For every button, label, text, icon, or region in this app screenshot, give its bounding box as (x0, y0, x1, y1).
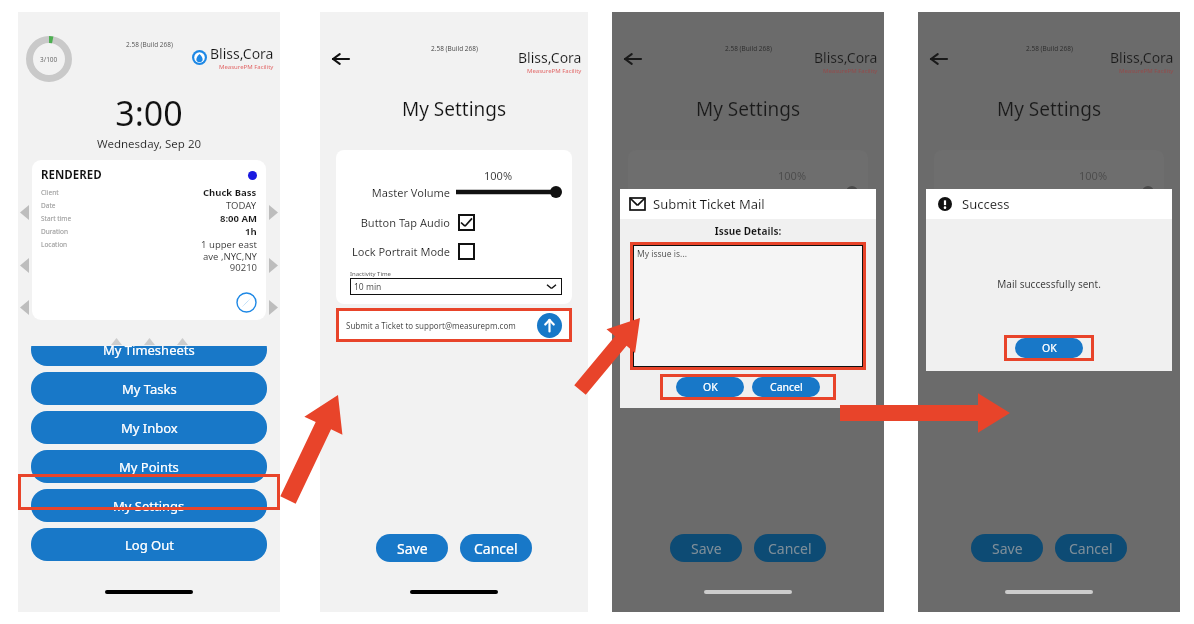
staticText: 1h (245, 225, 257, 238)
button[interactable]: Navigate (236, 292, 257, 313)
staticText: Log Out (125, 536, 174, 554)
staticText: Bliss,Cora (210, 44, 274, 63)
staticText: Bliss,Cora (814, 48, 878, 67)
button[interactable]: Cancel (752, 377, 820, 397)
button[interactable]: Submit a Ticket to support@measurepm.com (336, 308, 572, 342)
button[interactable]: Back (926, 46, 952, 72)
button[interactable]: OK (1015, 338, 1083, 358)
button[interactable]: My Inbox (31, 411, 267, 444)
staticText: Client (41, 188, 203, 197)
button[interactable]: Log Out (31, 528, 267, 561)
staticText: Bliss,Cora (518, 48, 582, 67)
staticText: Inactivity Time (350, 270, 391, 278)
staticText: Master Volume (342, 185, 450, 200)
staticText: 1 upper east ave ,NYC,NY 90210 (201, 238, 257, 274)
button[interactable]: Cancel (1055, 534, 1127, 562)
staticText: 2.58 (Build 268) (431, 44, 478, 53)
staticText: 2.58 (Build 268) (126, 40, 173, 49)
staticText: MeasurePM Facility (527, 67, 582, 75)
button[interactable]: 10 min (350, 278, 562, 295)
button[interactable]: Save (376, 534, 448, 562)
button[interactable]: OK (676, 377, 744, 397)
staticText: MeasurePM Facility (1119, 67, 1174, 75)
staticText: Button Tap Audio (940, 215, 1048, 230)
button[interactable]: 10 min (948, 278, 1154, 295)
staticText: Location (41, 240, 201, 249)
staticText: MeasurePM Facility (823, 67, 878, 75)
staticText: OK (1042, 341, 1057, 355)
staticText: My Settings (612, 96, 884, 122)
staticText: Issue Details: (630, 224, 866, 238)
staticText: My Settings (320, 96, 588, 122)
staticText: Cancel (1069, 539, 1113, 558)
staticText: 100% (484, 168, 513, 183)
button[interactable] (1054, 184, 1154, 200)
staticText: Bliss,Cora (1110, 48, 1174, 67)
staticText: Button Tap Audio (634, 215, 742, 230)
button[interactable]: Save (670, 534, 742, 562)
button[interactable]: My issue is... (633, 245, 863, 367)
staticText: Button Tap Audio (342, 215, 450, 230)
staticText: Mail successfully sent. (926, 277, 1172, 291)
button[interactable]: Lock Portrait Mode (342, 243, 562, 260)
staticText: My Tasks (122, 380, 177, 398)
staticText: RENDERED (41, 167, 248, 183)
staticText: 100% (1079, 168, 1108, 183)
button[interactable]: Back (328, 46, 354, 72)
button[interactable]: Button Tap Audio (940, 214, 1154, 231)
staticText: 100% (778, 168, 807, 183)
button[interactable]: Button Tap Audio (342, 214, 562, 231)
staticText: Cancel (770, 380, 803, 394)
staticText: My issue is... (637, 248, 687, 260)
staticText: Chuck Bass (203, 186, 257, 199)
staticText: Save (691, 539, 722, 558)
staticText: Save (992, 539, 1023, 558)
staticText: My Points (119, 458, 179, 476)
staticText: Master Volume (634, 185, 742, 200)
staticText: OK (703, 380, 718, 394)
button[interactable]: Cancel (754, 534, 826, 562)
staticText: 3/100 (40, 55, 58, 64)
button[interactable]: My Points (31, 450, 267, 483)
staticText: My Settings (113, 497, 185, 515)
staticText: 3:00 (18, 90, 280, 136)
staticText: Wednesday, Sep 20 (18, 136, 280, 152)
button[interactable]: My Timesheets (31, 333, 267, 366)
button[interactable] (748, 184, 858, 200)
button[interactable]: RENDERED (32, 160, 266, 320)
button[interactable]: Lock Portrait Mode (634, 243, 858, 260)
staticText: Master Volume (940, 185, 1048, 200)
button[interactable]: Save (971, 534, 1043, 562)
staticText: Lock Portrait Mode (634, 244, 742, 259)
staticText: 2.58 (Build 268) (725, 44, 772, 53)
staticText: My Timesheets (103, 341, 195, 359)
staticText: Date (41, 201, 226, 210)
staticText: MeasurePM Facility (219, 63, 274, 71)
button[interactable]: My Tasks (31, 372, 267, 405)
staticText: Save (397, 539, 428, 558)
staticText: 10 min (354, 281, 382, 293)
staticText: Duration (41, 227, 245, 236)
staticText: My Inbox (121, 419, 178, 437)
staticText: 2.58 (Build 268) (1026, 44, 1073, 53)
staticText: 8:00 AM (220, 212, 257, 225)
button[interactable]: Back (620, 46, 646, 72)
button[interactable]: Cancel (460, 534, 532, 562)
staticText: Cancel (474, 539, 518, 558)
staticText: TODAY (226, 199, 257, 212)
staticText: Submit a Ticket to support@measurepm.com (346, 320, 537, 331)
staticText: Submit Ticket Mail (653, 195, 765, 213)
staticText: My Settings (918, 96, 1180, 122)
button[interactable]: Button Tap Audio (634, 214, 858, 231)
staticText: Cancel (768, 539, 812, 558)
button[interactable] (456, 184, 562, 200)
staticText: Lock Portrait Mode (342, 244, 450, 259)
button[interactable]: My Settings (31, 489, 267, 522)
